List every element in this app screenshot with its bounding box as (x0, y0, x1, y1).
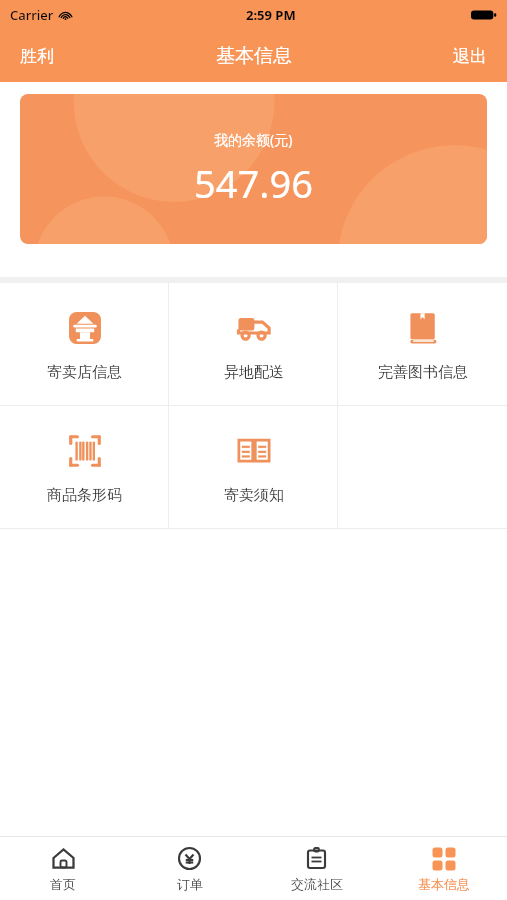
button[interactable]: 我的余额(元) (20, 94, 487, 244)
staticText: 订单 (177, 876, 203, 892)
staticText: 异地配送 (224, 363, 284, 382)
button[interactable]: 交流社区 (253, 837, 380, 900)
staticText: 2:59 PM (246, 6, 296, 24)
staticText: 商品条形码 (47, 486, 122, 505)
button[interactable]: 首页 (0, 837, 126, 900)
staticText: 基本信息 (216, 44, 292, 68)
button[interactable]: 寄卖须知 (169, 406, 338, 528)
staticText: 退出 (453, 46, 487, 67)
button[interactable]: 基本信息 (380, 837, 507, 900)
staticText: 完善图书信息 (378, 363, 468, 382)
staticText: 胜利 (20, 46, 54, 67)
button[interactable]: 胜利 (0, 36, 74, 77)
staticText: 547.96 (194, 157, 313, 209)
button[interactable]: 异地配送 (169, 283, 338, 405)
button[interactable]: 完善图书信息 (338, 283, 507, 405)
button[interactable]: 订单 (126, 837, 253, 900)
staticText: 首页 (50, 876, 76, 892)
staticText: 基本信息 (418, 876, 470, 892)
staticText: Carrier (10, 6, 54, 24)
button[interactable]: 退出 (433, 36, 507, 77)
staticText: 交流社区 (291, 876, 343, 892)
button[interactable]: 商品条形码 (0, 406, 169, 528)
staticText: 我的余额(元) (214, 130, 293, 149)
staticText: 寄卖须知 (224, 486, 284, 505)
staticText: 寄卖店信息 (47, 363, 122, 382)
button[interactable]: 寄卖店信息 (0, 283, 169, 405)
